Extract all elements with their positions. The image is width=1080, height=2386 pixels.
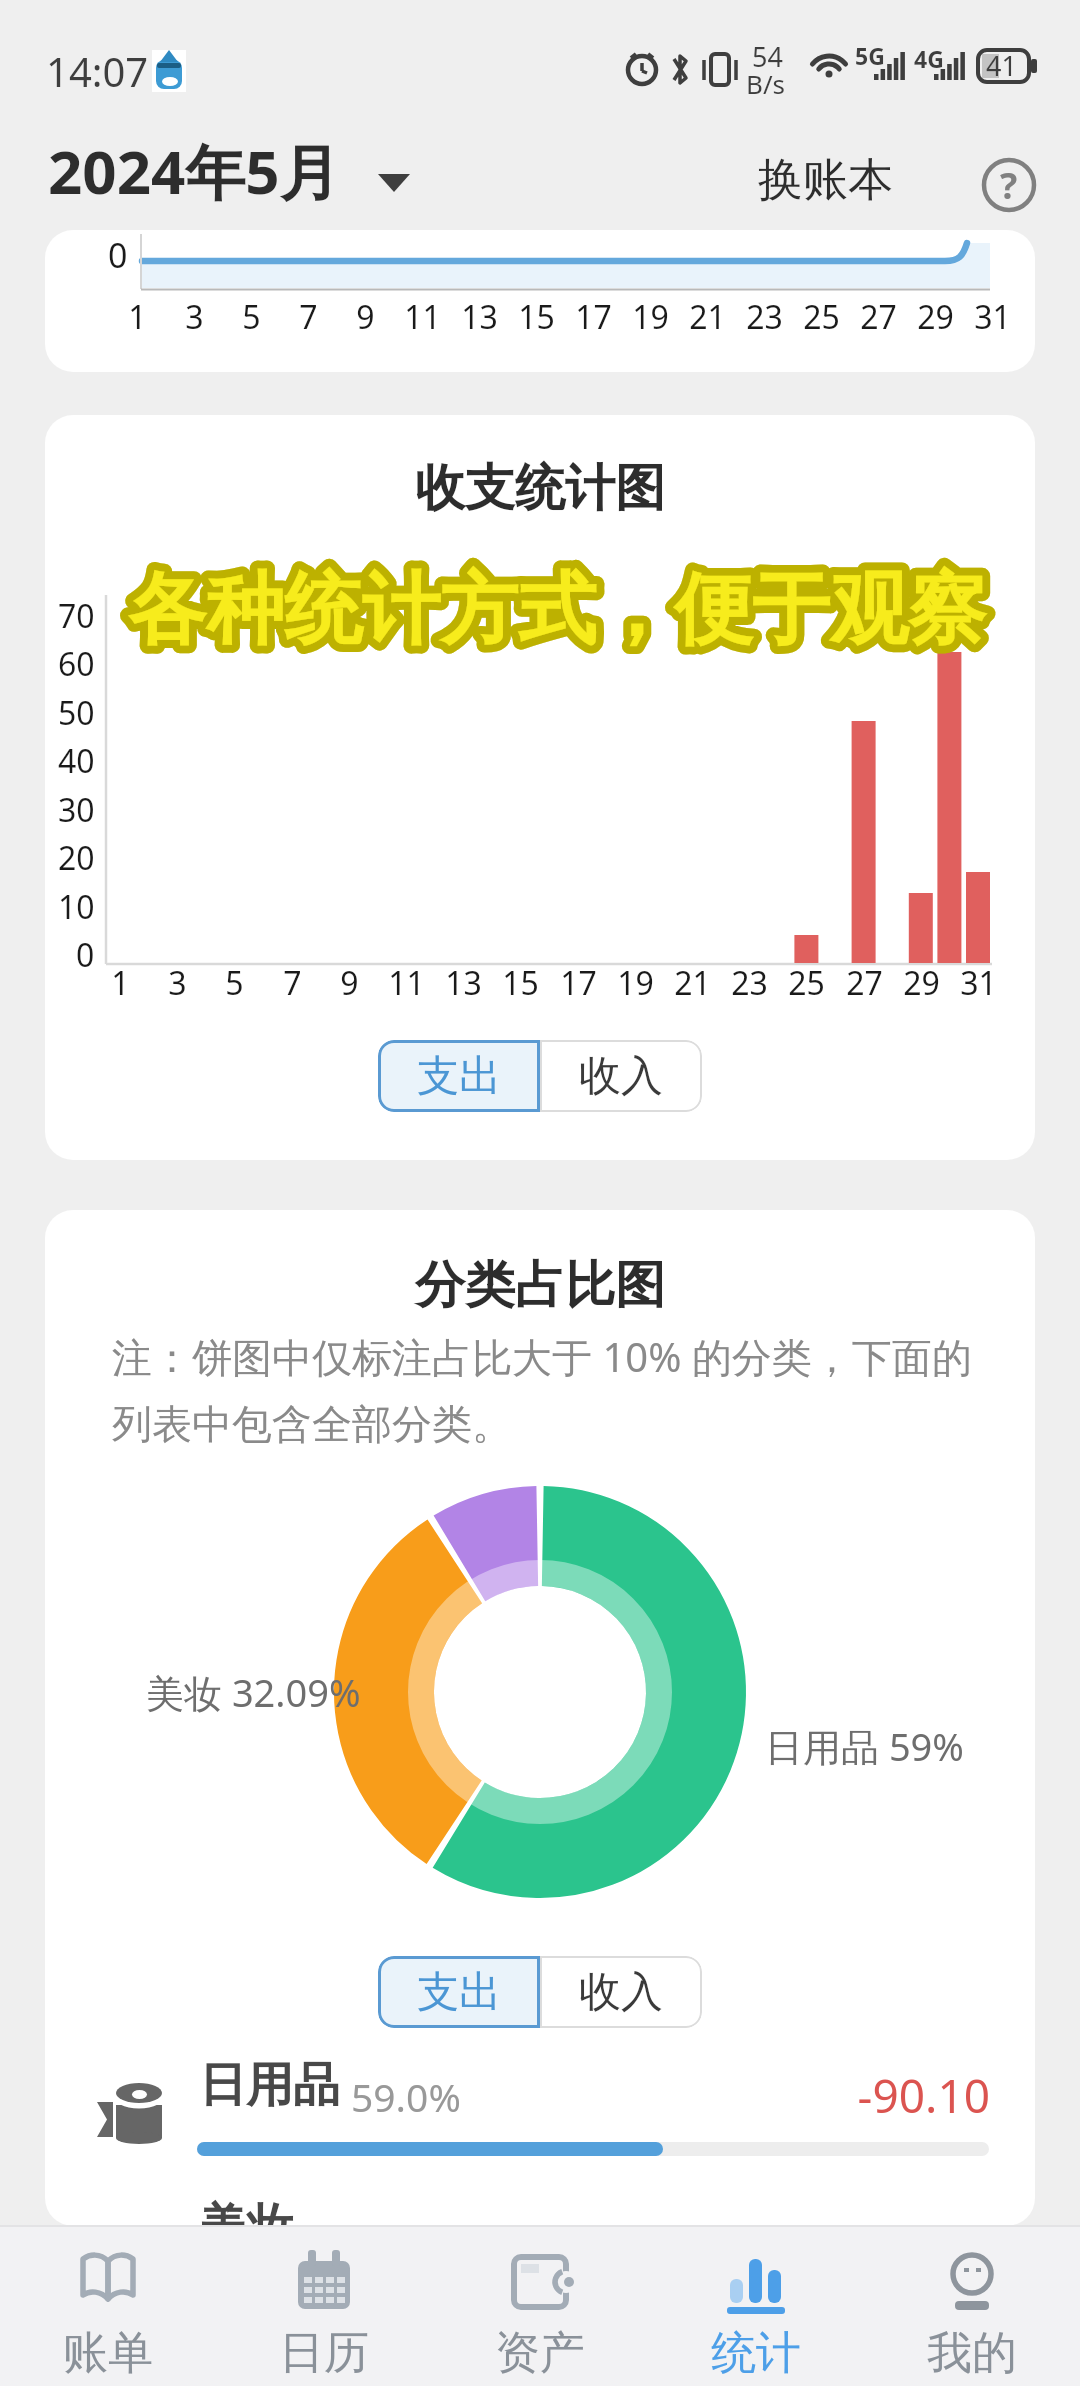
staticText: 9	[340, 961, 359, 1005]
staticText: 注：饼图中仅标注占比大于 10% 的分类，下面的	[112, 1329, 972, 1384]
staticText: 0	[108, 232, 128, 278]
staticText: 21	[674, 961, 711, 1005]
staticText: 13	[461, 295, 498, 339]
staticText: 3	[185, 295, 204, 339]
staticText: 我的	[927, 2325, 1017, 2382]
staticText: 2024年5月	[48, 130, 340, 212]
staticText: 41	[986, 47, 1017, 84]
button[interactable]: 统计	[648, 2227, 864, 2386]
button[interactable]: 日用品	[45, 2068, 1035, 2178]
staticText: 23	[731, 961, 768, 1005]
staticText: 统计	[711, 2325, 801, 2382]
staticText: 美妆 32.09%	[146, 1666, 361, 1718]
staticText: 11	[388, 961, 425, 1005]
staticText: 29	[917, 295, 954, 339]
staticText: 3	[168, 961, 187, 1005]
staticText: 7	[299, 295, 318, 339]
staticText: B/s	[746, 66, 786, 101]
staticText: 27	[860, 295, 897, 339]
staticText: 7	[283, 961, 302, 1005]
staticText: 17	[560, 961, 597, 1005]
staticText: 25	[803, 295, 840, 339]
staticText: 收支统计图	[415, 457, 665, 520]
staticText: 收入	[579, 1050, 663, 1103]
staticText: 账单	[63, 2325, 153, 2382]
staticText: 支出	[417, 1050, 501, 1103]
staticText: ?	[1000, 161, 1018, 210]
button[interactable]: 账单	[0, 2227, 216, 2386]
button[interactable]: 支出	[378, 1956, 540, 2028]
button[interactable]: 2024年5月	[48, 130, 410, 212]
staticText: 31	[960, 961, 997, 1005]
staticText: 4G	[914, 43, 944, 74]
staticText: -90.10	[857, 2064, 990, 2127]
staticText: 5G	[855, 40, 885, 71]
button[interactable]: 换账本	[758, 152, 893, 209]
staticText: 支出	[417, 1966, 501, 2019]
staticText: 美妆	[199, 2197, 293, 2226]
staticText: 换账本	[758, 152, 893, 209]
staticText: 1	[128, 295, 147, 339]
button[interactable]: ?	[980, 156, 1038, 214]
button[interactable]: 资产	[432, 2227, 648, 2386]
staticText: 19	[632, 295, 669, 339]
staticText: 日用品 59%	[765, 1720, 964, 1772]
staticText: 59.0%	[351, 2070, 461, 2123]
staticText: 25	[788, 961, 825, 1005]
staticText: 列表中包含全部分类。	[112, 1399, 512, 1449]
staticText: 日用品	[199, 2056, 340, 2115]
staticText: 9	[356, 295, 375, 339]
staticText: 27	[846, 961, 883, 1005]
staticText: 11	[404, 295, 441, 339]
button[interactable]: 日历	[216, 2227, 432, 2386]
staticText: 分类占比图	[415, 1254, 665, 1317]
staticText: 1	[111, 961, 130, 1005]
staticText: 日历	[279, 2325, 369, 2382]
staticText: 15	[518, 295, 555, 339]
staticText: 各种统计方式，便于观察	[128, 561, 986, 659]
staticText: 29	[903, 961, 940, 1005]
button[interactable]: 支出	[378, 1040, 540, 1112]
staticText: 17	[575, 295, 612, 339]
staticText: 31	[974, 295, 1011, 339]
staticText: 5	[242, 295, 261, 339]
staticText: 19	[617, 961, 654, 1005]
staticText: 各种统计方式，便于观察	[128, 561, 986, 659]
button[interactable]: 收入	[540, 1040, 702, 1112]
staticText: 收入	[579, 1966, 663, 2019]
staticText: 21	[689, 295, 726, 339]
staticText: 14:07	[46, 44, 149, 98]
staticText: 54	[752, 38, 783, 75]
staticText: 资产	[495, 2325, 585, 2382]
staticText: 13	[445, 961, 482, 1005]
button[interactable]: 收入	[540, 1956, 702, 2028]
button[interactable]: 我的	[864, 2227, 1080, 2386]
staticText: 5	[225, 961, 244, 1005]
staticText: 15	[502, 961, 539, 1005]
staticText: 23	[746, 295, 783, 339]
